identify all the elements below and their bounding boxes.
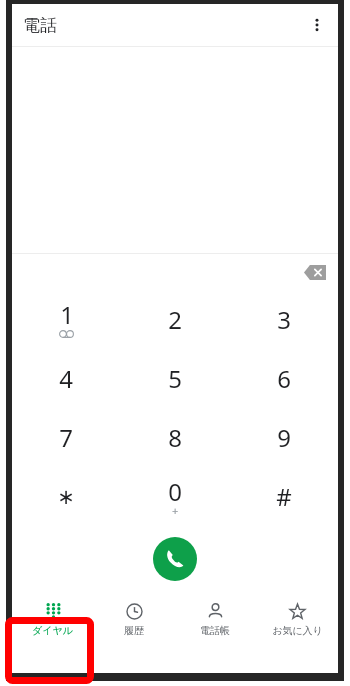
staticText: 3 — [277, 303, 291, 336]
staticText: 1 — [60, 298, 74, 331]
staticText: 7 — [59, 421, 73, 454]
button[interactable]: 9 — [229, 408, 338, 467]
button[interactable]: 6 — [229, 349, 338, 408]
button[interactable]: 1 — [12, 290, 120, 349]
button[interactable]: 7 — [12, 408, 120, 467]
staticText: ∗ — [57, 485, 75, 509]
button[interactable]: More options — [302, 10, 332, 40]
staticText: 8 — [168, 421, 182, 454]
button[interactable]: 5 — [120, 349, 229, 408]
button[interactable]: お気に入り — [256, 592, 338, 646]
staticText: 電話帳 — [200, 624, 230, 637]
button[interactable]: Call — [153, 537, 197, 581]
staticText: 9 — [277, 421, 291, 454]
button[interactable]: 0 — [120, 467, 229, 526]
button[interactable]: 2 — [120, 290, 229, 349]
staticText: 6 — [277, 362, 291, 395]
staticText: + — [172, 503, 179, 518]
staticText: 電話 — [23, 15, 57, 36]
button[interactable]: # — [229, 467, 338, 526]
button[interactable]: 電話帳 — [174, 592, 256, 646]
button[interactable]: 履歴 — [93, 592, 174, 646]
staticText: 履歴 — [124, 624, 144, 637]
staticText: 2 — [168, 303, 182, 336]
button[interactable]: ダイヤル — [12, 592, 93, 646]
staticText: 4 — [59, 362, 73, 395]
staticText: ダイヤル — [32, 624, 73, 637]
button[interactable]: 4 — [12, 349, 120, 408]
staticText: 5 — [168, 362, 182, 395]
button[interactable]: 8 — [120, 408, 229, 467]
button[interactable]: Backspace — [298, 255, 332, 289]
staticText: # — [276, 480, 292, 513]
staticText: お気に入り — [272, 624, 323, 637]
button[interactable]: ∗ — [12, 467, 120, 526]
staticText: 0 — [168, 475, 182, 508]
button[interactable]: 3 — [229, 290, 338, 349]
